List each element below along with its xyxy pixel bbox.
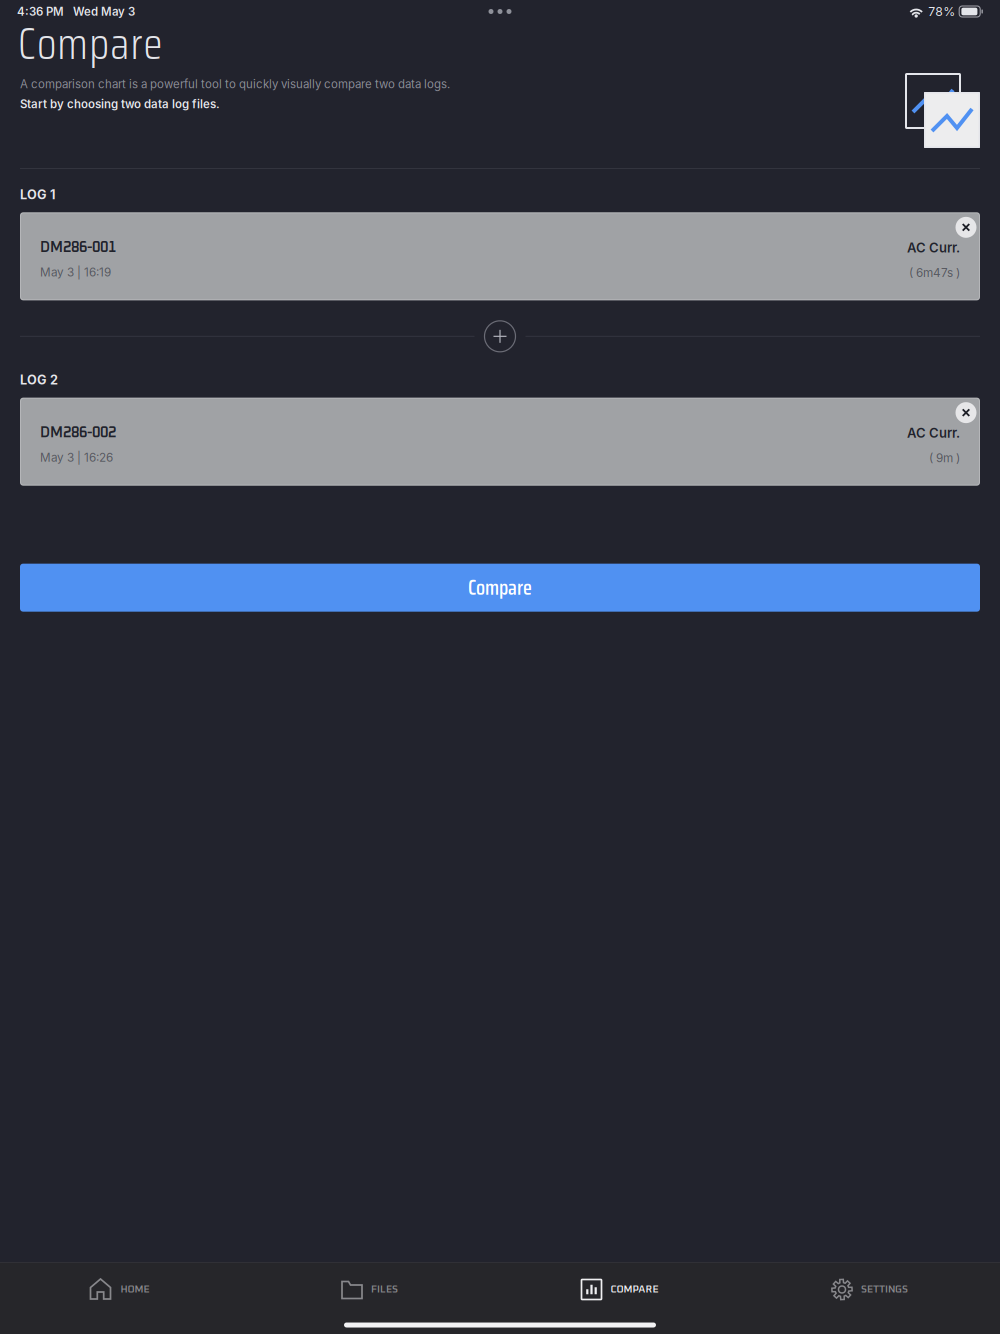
staticText: SETTINGS — [861, 1284, 908, 1294]
staticText: Wed May 3 — [73, 5, 135, 18]
staticText: AC Curr. — [907, 425, 960, 441]
staticText: May 3 | 16:26 — [40, 450, 113, 465]
staticText: LOG 2 — [20, 372, 58, 388]
staticText: FILES — [371, 1284, 398, 1294]
staticText: HOME — [120, 1284, 149, 1294]
button[interactable]: SETTINGS — [750, 1263, 1000, 1316]
button[interactable]: Add log — [474, 316, 525, 356]
staticText: Compare — [468, 571, 532, 604]
staticText: A comparison chart is a powerful tool to… — [20, 77, 450, 91]
staticText: 4:36 PM — [17, 5, 64, 18]
button[interactable]: DM286-002 — [20, 398, 980, 486]
button[interactable]: Remove log — [951, 398, 981, 428]
button[interactable]: DM286-001 — [20, 212, 980, 300]
staticText: DM286-001 — [40, 240, 116, 255]
staticText: LOG 1 — [20, 187, 55, 202]
button[interactable]: Remove log — [951, 212, 981, 242]
staticText: May 3 | 16:19 — [40, 265, 111, 279]
staticText: AC Curr. — [907, 240, 960, 256]
staticText: 78% — [928, 4, 955, 19]
staticText: DM286-002 — [40, 426, 116, 440]
staticText: ( 9m ) — [929, 451, 960, 465]
staticText: Compare — [18, 9, 163, 78]
staticText: Start by choosing two data log files. — [20, 97, 220, 111]
staticText: COMPARE — [610, 1284, 658, 1294]
button[interactable]: FILES — [250, 1263, 500, 1316]
button[interactable]: COMPARE — [500, 1263, 750, 1316]
staticText: ( 6m47s ) — [909, 266, 960, 280]
button[interactable]: HOME — [0, 1263, 250, 1316]
button[interactable]: Compare — [20, 564, 980, 612]
